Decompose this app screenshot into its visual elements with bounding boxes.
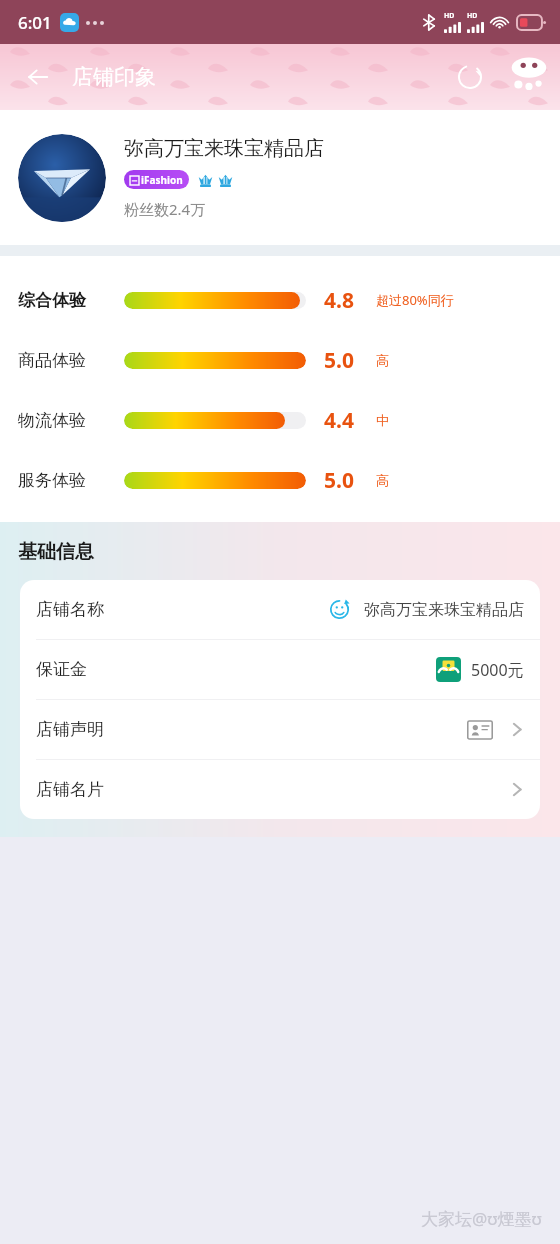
button[interactable]: Back bbox=[16, 55, 60, 99]
staticText: 大家坛@ʊ煙墨ʊ bbox=[421, 1207, 542, 1230]
button[interactable]: 商品体验 bbox=[0, 330, 560, 390]
staticText: 物流体验 bbox=[18, 410, 106, 431]
staticText: 高 bbox=[376, 472, 389, 488]
staticText: 店铺名称 bbox=[36, 599, 104, 620]
staticText: 保证金 bbox=[36, 659, 87, 680]
staticText: 商品体验 bbox=[18, 350, 106, 371]
staticText: 4.4 bbox=[324, 406, 368, 435]
staticText: 超过80%同行 bbox=[376, 291, 454, 309]
staticText: 弥高万宝来珠宝精品店 bbox=[124, 136, 324, 161]
button[interactable]: 服务体验 bbox=[0, 450, 560, 510]
staticText: HD bbox=[444, 11, 455, 21]
staticText: 店铺名片 bbox=[36, 779, 104, 800]
button[interactable]: 保证金 bbox=[20, 640, 540, 699]
staticText: 店铺印象 bbox=[72, 64, 156, 90]
staticText: 4.8 bbox=[324, 286, 368, 315]
button[interactable]: 店铺声明 bbox=[20, 700, 540, 759]
staticText: 弥高万宝来珠宝精品店 bbox=[364, 600, 524, 620]
staticText: 综合体验 bbox=[18, 290, 106, 311]
button[interactable]: 弥高万宝来珠宝精品店 bbox=[0, 110, 560, 245]
staticText: 基础信息 bbox=[18, 540, 94, 564]
staticText: 6:01 bbox=[18, 11, 52, 34]
staticText: 中 bbox=[376, 412, 389, 428]
staticText: 店铺声明 bbox=[36, 719, 104, 740]
button[interactable]: Refresh bbox=[448, 55, 492, 99]
staticText: 服务体验 bbox=[18, 470, 106, 491]
staticText: HD bbox=[467, 11, 478, 21]
button[interactable]: 店铺名称 bbox=[20, 580, 540, 639]
staticText: 5.0 bbox=[324, 346, 368, 375]
staticText: iFashion bbox=[141, 173, 183, 187]
staticText: 5000元 bbox=[471, 659, 524, 681]
button[interactable]: 店铺名片 bbox=[20, 760, 540, 819]
staticText: 粉丝数2.4万 bbox=[124, 199, 206, 219]
button[interactable]: Assistant bbox=[504, 48, 552, 96]
button[interactable]: 物流体验 bbox=[0, 390, 560, 450]
staticText: 高 bbox=[376, 352, 389, 368]
button[interactable]: 综合体验 bbox=[0, 270, 560, 330]
staticText: 5.0 bbox=[324, 466, 368, 495]
